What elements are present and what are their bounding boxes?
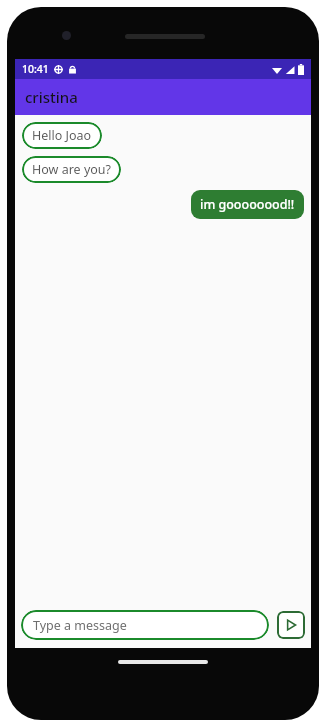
button[interactable]: cristina: [15, 79, 311, 115]
staticText: im goooooood!!: [200, 196, 295, 213]
button[interactable]: Hello Joao: [22, 122, 102, 149]
staticText: Type a message: [33, 617, 127, 634]
staticText: Hello Joao: [32, 127, 92, 144]
button[interactable]: im goooooood!!: [191, 190, 304, 219]
button[interactable]: How are you?: [22, 156, 121, 183]
staticText: cristina: [25, 87, 78, 107]
button[interactable]: Send: [277, 611, 305, 639]
staticText: How are you?: [32, 161, 111, 178]
staticText: 10:41: [22, 62, 49, 76]
button[interactable]: Type a message: [21, 610, 269, 640]
